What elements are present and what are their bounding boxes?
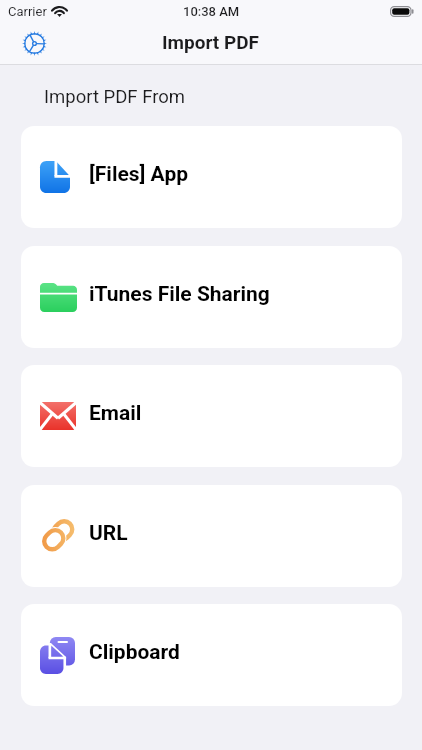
staticText: URL [89,521,128,546]
staticText: Import PDF [162,31,260,53]
button[interactable]: URL [21,485,402,587]
staticText: iTunes File Sharing [89,282,270,307]
button[interactable]: Settings [14,23,55,64]
button[interactable]: Email [21,365,402,467]
button[interactable]: Clipboard [21,604,402,706]
button[interactable]: [Files] App [21,126,402,228]
staticText: Email [89,401,142,426]
staticText: Carrier [8,4,47,19]
staticText: 10:38 AM [183,4,240,19]
button[interactable]: iTunes File Sharing [21,246,402,348]
staticText: Clipboard [89,640,180,665]
staticText: [Files] App [89,162,189,187]
staticText: Import PDF From [44,86,186,108]
